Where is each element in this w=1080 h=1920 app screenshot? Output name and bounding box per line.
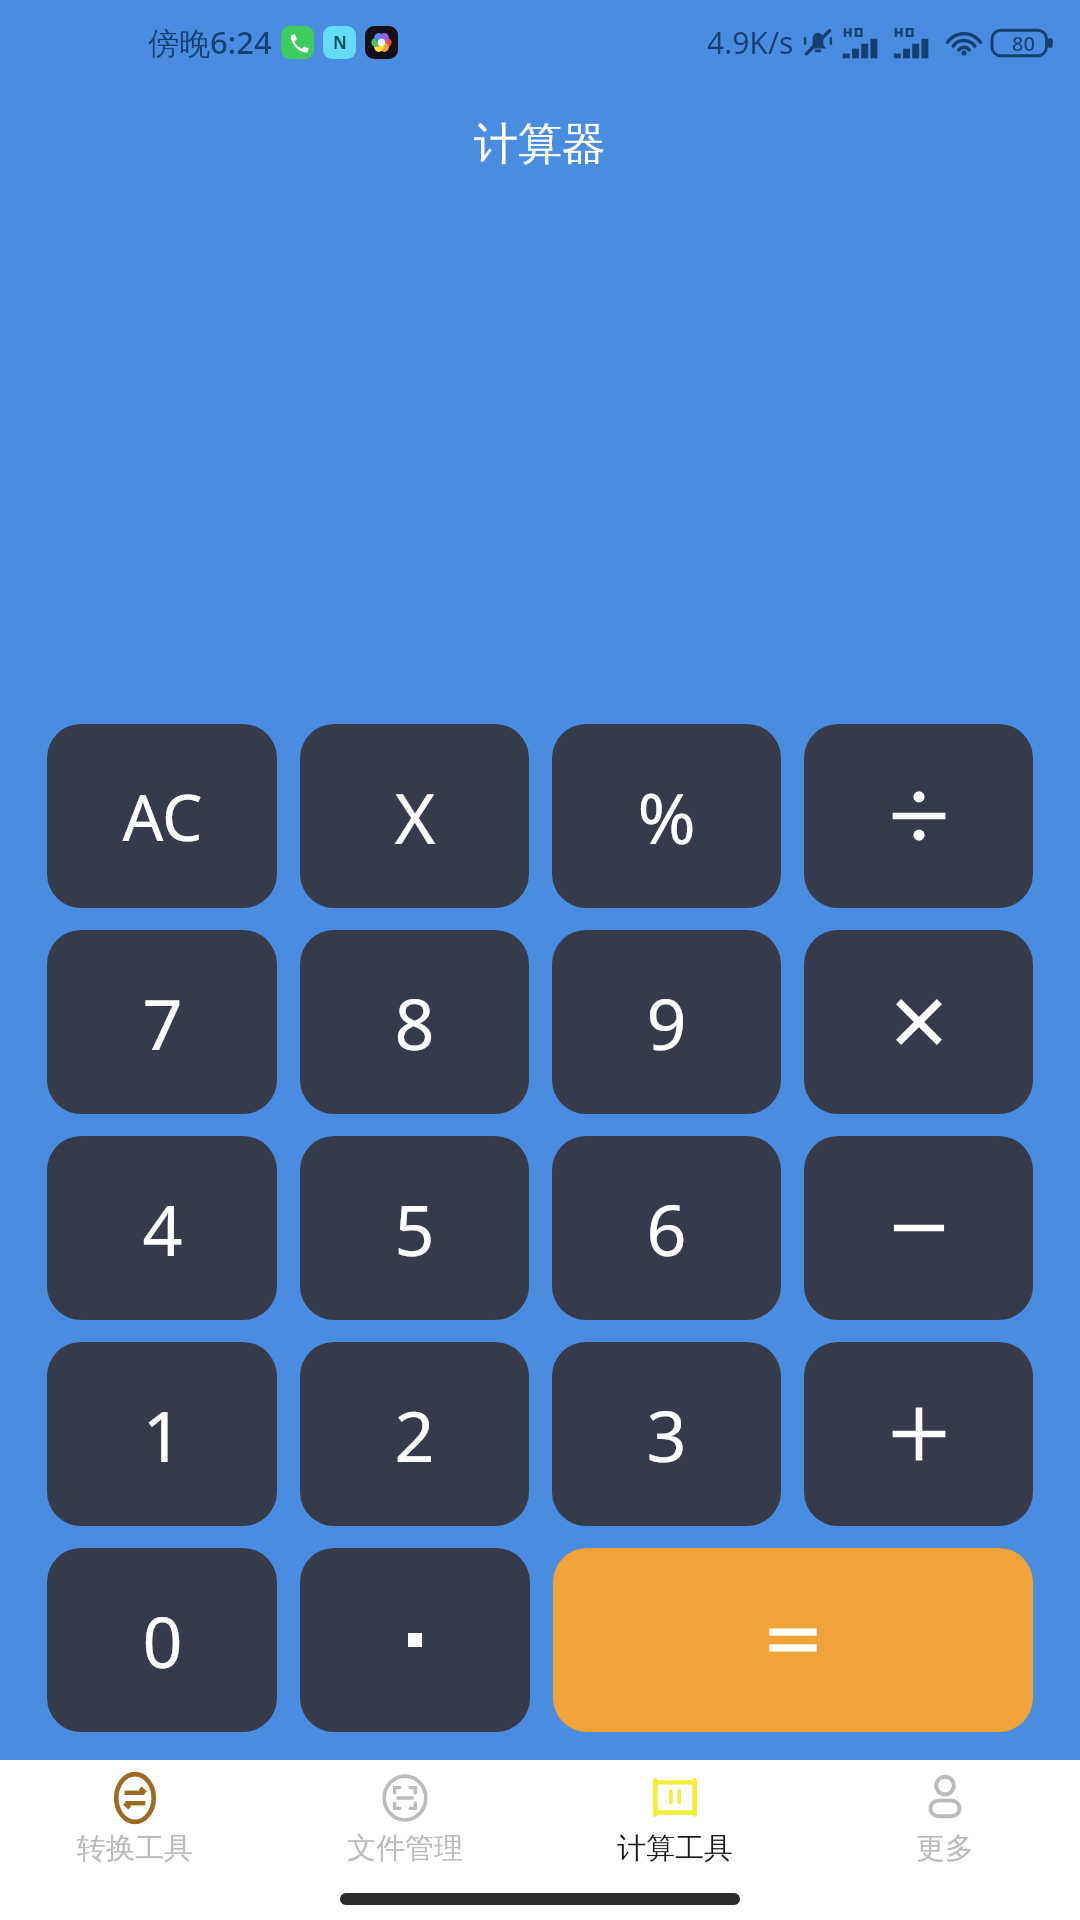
- staticText: 傍晚6:24: [148, 21, 272, 63]
- button[interactable]: 3: [552, 1342, 781, 1526]
- staticText: 计算工具: [617, 1830, 733, 1867]
- staticText: 4: [142, 1181, 183, 1276]
- button[interactable]: 文件管理: [270, 1772, 540, 1867]
- staticText: 7: [142, 975, 183, 1070]
- other: 转换工具: [109, 1772, 161, 1824]
- staticText: X: [394, 769, 436, 864]
- button[interactable]: [804, 724, 1033, 908]
- staticText: 8: [394, 975, 435, 1070]
- button[interactable]: [804, 1136, 1033, 1320]
- staticText: 80: [1012, 30, 1035, 57]
- other: 更多: [919, 1772, 971, 1824]
- button[interactable]: 4: [47, 1136, 277, 1320]
- button[interactable]: 6: [552, 1136, 781, 1320]
- button[interactable]: AC: [47, 724, 277, 908]
- staticText: N: [333, 31, 347, 54]
- button[interactable]: [300, 1548, 530, 1732]
- button[interactable]: 8: [300, 930, 529, 1114]
- staticText: 2: [394, 1387, 435, 1482]
- button[interactable]: 2: [300, 1342, 529, 1526]
- staticText: 更多: [916, 1830, 974, 1867]
- staticText: 转换工具: [77, 1830, 193, 1867]
- staticText: %: [637, 769, 696, 864]
- staticText: AC: [122, 773, 203, 860]
- staticText: 计算器: [474, 117, 606, 172]
- button[interactable]: [553, 1548, 1033, 1732]
- staticText: 0: [142, 1593, 183, 1688]
- staticText: 5: [394, 1181, 435, 1276]
- button[interactable]: %: [552, 724, 781, 908]
- button[interactable]: 7: [47, 930, 277, 1114]
- button[interactable]: 更多: [810, 1772, 1080, 1867]
- button[interactable]: 5: [300, 1136, 529, 1320]
- staticText: 6: [646, 1181, 687, 1276]
- button[interactable]: 0: [47, 1548, 277, 1732]
- staticText: 9: [646, 975, 687, 1070]
- button[interactable]: 1: [47, 1342, 277, 1526]
- staticText: 3: [646, 1387, 687, 1482]
- staticText: 4.9K/s: [707, 22, 794, 63]
- other: 计算工具: [649, 1772, 701, 1824]
- staticText: 1: [142, 1387, 183, 1482]
- button[interactable]: [804, 930, 1033, 1114]
- button[interactable]: 9: [552, 930, 781, 1114]
- staticText: 文件管理: [347, 1830, 463, 1867]
- other: 文件管理: [379, 1772, 431, 1824]
- button[interactable]: 计算工具: [540, 1772, 810, 1867]
- button[interactable]: 转换工具: [0, 1772, 270, 1867]
- button[interactable]: X: [300, 724, 529, 908]
- button[interactable]: [804, 1342, 1033, 1526]
